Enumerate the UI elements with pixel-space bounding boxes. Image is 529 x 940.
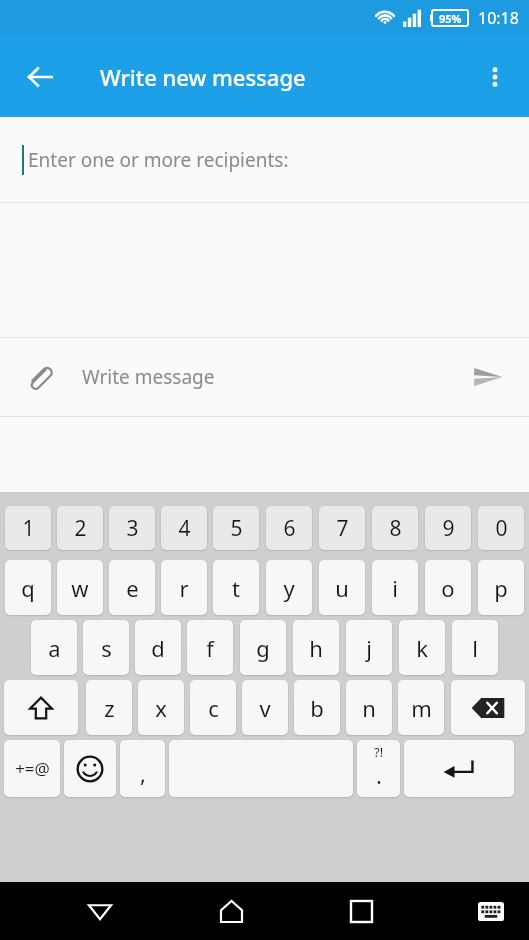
staticText: x [155,693,167,723]
staticText: o [441,573,455,603]
button[interactable]: c [190,680,236,735]
button[interactable]: 1 [5,506,51,550]
staticText: e [126,573,139,603]
button[interactable]: z [86,680,132,735]
staticText: c [208,693,219,723]
button[interactable]: o [425,560,471,615]
button[interactable]: Back [12,49,68,105]
staticText: n [362,693,376,723]
staticText: a [48,633,61,663]
staticText: 95% [439,11,462,26]
button[interactable]: Comma [120,740,165,797]
button[interactable]: b [294,680,340,735]
button[interactable]: l [452,620,498,675]
button[interactable]: a [31,620,77,675]
staticText: j [366,633,372,663]
staticText: p [494,573,508,603]
button[interactable]: 3 [109,506,155,550]
button[interactable]: Send [461,350,515,404]
staticText: 2 [74,514,87,543]
button[interactable]: s [83,620,129,675]
staticText: t [232,573,240,603]
staticText: 6 [283,514,296,543]
button[interactable]: r [161,560,207,615]
staticText: ?! [374,743,384,761]
staticText: Write message [82,364,215,390]
staticText: . [376,760,382,790]
staticText: s [101,633,112,663]
button[interactable]: j [346,620,392,675]
button[interactable]: Back [72,883,128,939]
button[interactable]: m [398,680,444,735]
button[interactable]: n [346,680,392,735]
button[interactable]: Enter one or more recipients: [0,117,529,203]
staticText: 9 [442,514,455,543]
button[interactable]: k [399,620,445,675]
button[interactable]: Hide keyboard [463,883,519,939]
staticText: +=@ [15,757,50,780]
button[interactable]: w [57,560,103,615]
button[interactable]: v [242,680,288,735]
button[interactable]: 4 [161,506,207,550]
staticText: m [411,693,432,723]
button[interactable]: 9 [425,506,471,550]
staticText: g [256,633,270,663]
staticText: q [21,573,35,603]
staticText: 4 [178,514,191,543]
button[interactable]: 7 [319,506,365,550]
staticText: w [71,573,89,603]
button[interactable]: x [138,680,184,735]
staticText: b [310,693,324,723]
button[interactable]: e [109,560,155,615]
staticText: Enter one or more recipients: [28,147,289,173]
staticText: 5 [230,514,243,543]
button[interactable]: f [187,620,233,675]
button[interactable]: u [319,560,365,615]
staticText: r [179,573,189,603]
button[interactable]: Recents [333,883,389,939]
button[interactable]: More options [469,51,521,103]
staticText: z [104,693,115,723]
button[interactable]: 6 [266,506,312,550]
button[interactable]: Symbols [4,740,60,797]
button[interactable]: h [293,620,339,675]
button[interactable]: Shift [4,680,78,735]
button[interactable]: Emoji [64,740,116,797]
button[interactable]: Attach [12,350,66,404]
button[interactable]: Write message [82,364,461,390]
staticText: , [140,758,146,788]
button[interactable]: p [478,560,524,615]
button[interactable]: d [135,620,181,675]
button[interactable]: y [266,560,312,615]
staticText: d [151,633,165,663]
staticText: 0 [495,514,508,543]
staticText: f [206,633,214,663]
staticText: u [335,573,349,603]
button[interactable]: t [213,560,259,615]
button[interactable]: 5 [213,506,259,550]
button[interactable]: i [372,560,418,615]
staticText: h [309,633,323,663]
button[interactable]: 2 [57,506,103,550]
staticText: 3 [126,514,139,543]
staticText: l [472,633,478,663]
staticText: Write new message [100,62,306,92]
button[interactable]: Backspace [451,680,525,735]
staticText: v [259,693,271,723]
staticText: 10:18 [478,7,519,29]
button[interactable]: Home [203,883,259,939]
staticText: y [283,573,295,603]
staticText: 7 [336,514,349,543]
button[interactable]: 0 [478,506,524,550]
button[interactable]: q [5,560,51,615]
staticText: 8 [389,514,402,543]
staticText: k [416,633,428,663]
button[interactable]: g [240,620,286,675]
staticText: i [392,573,398,603]
button[interactable]: Period [357,740,400,797]
staticText: 1 [22,514,35,543]
button[interactable]: 8 [372,506,418,550]
button[interactable]: Enter [404,740,514,797]
